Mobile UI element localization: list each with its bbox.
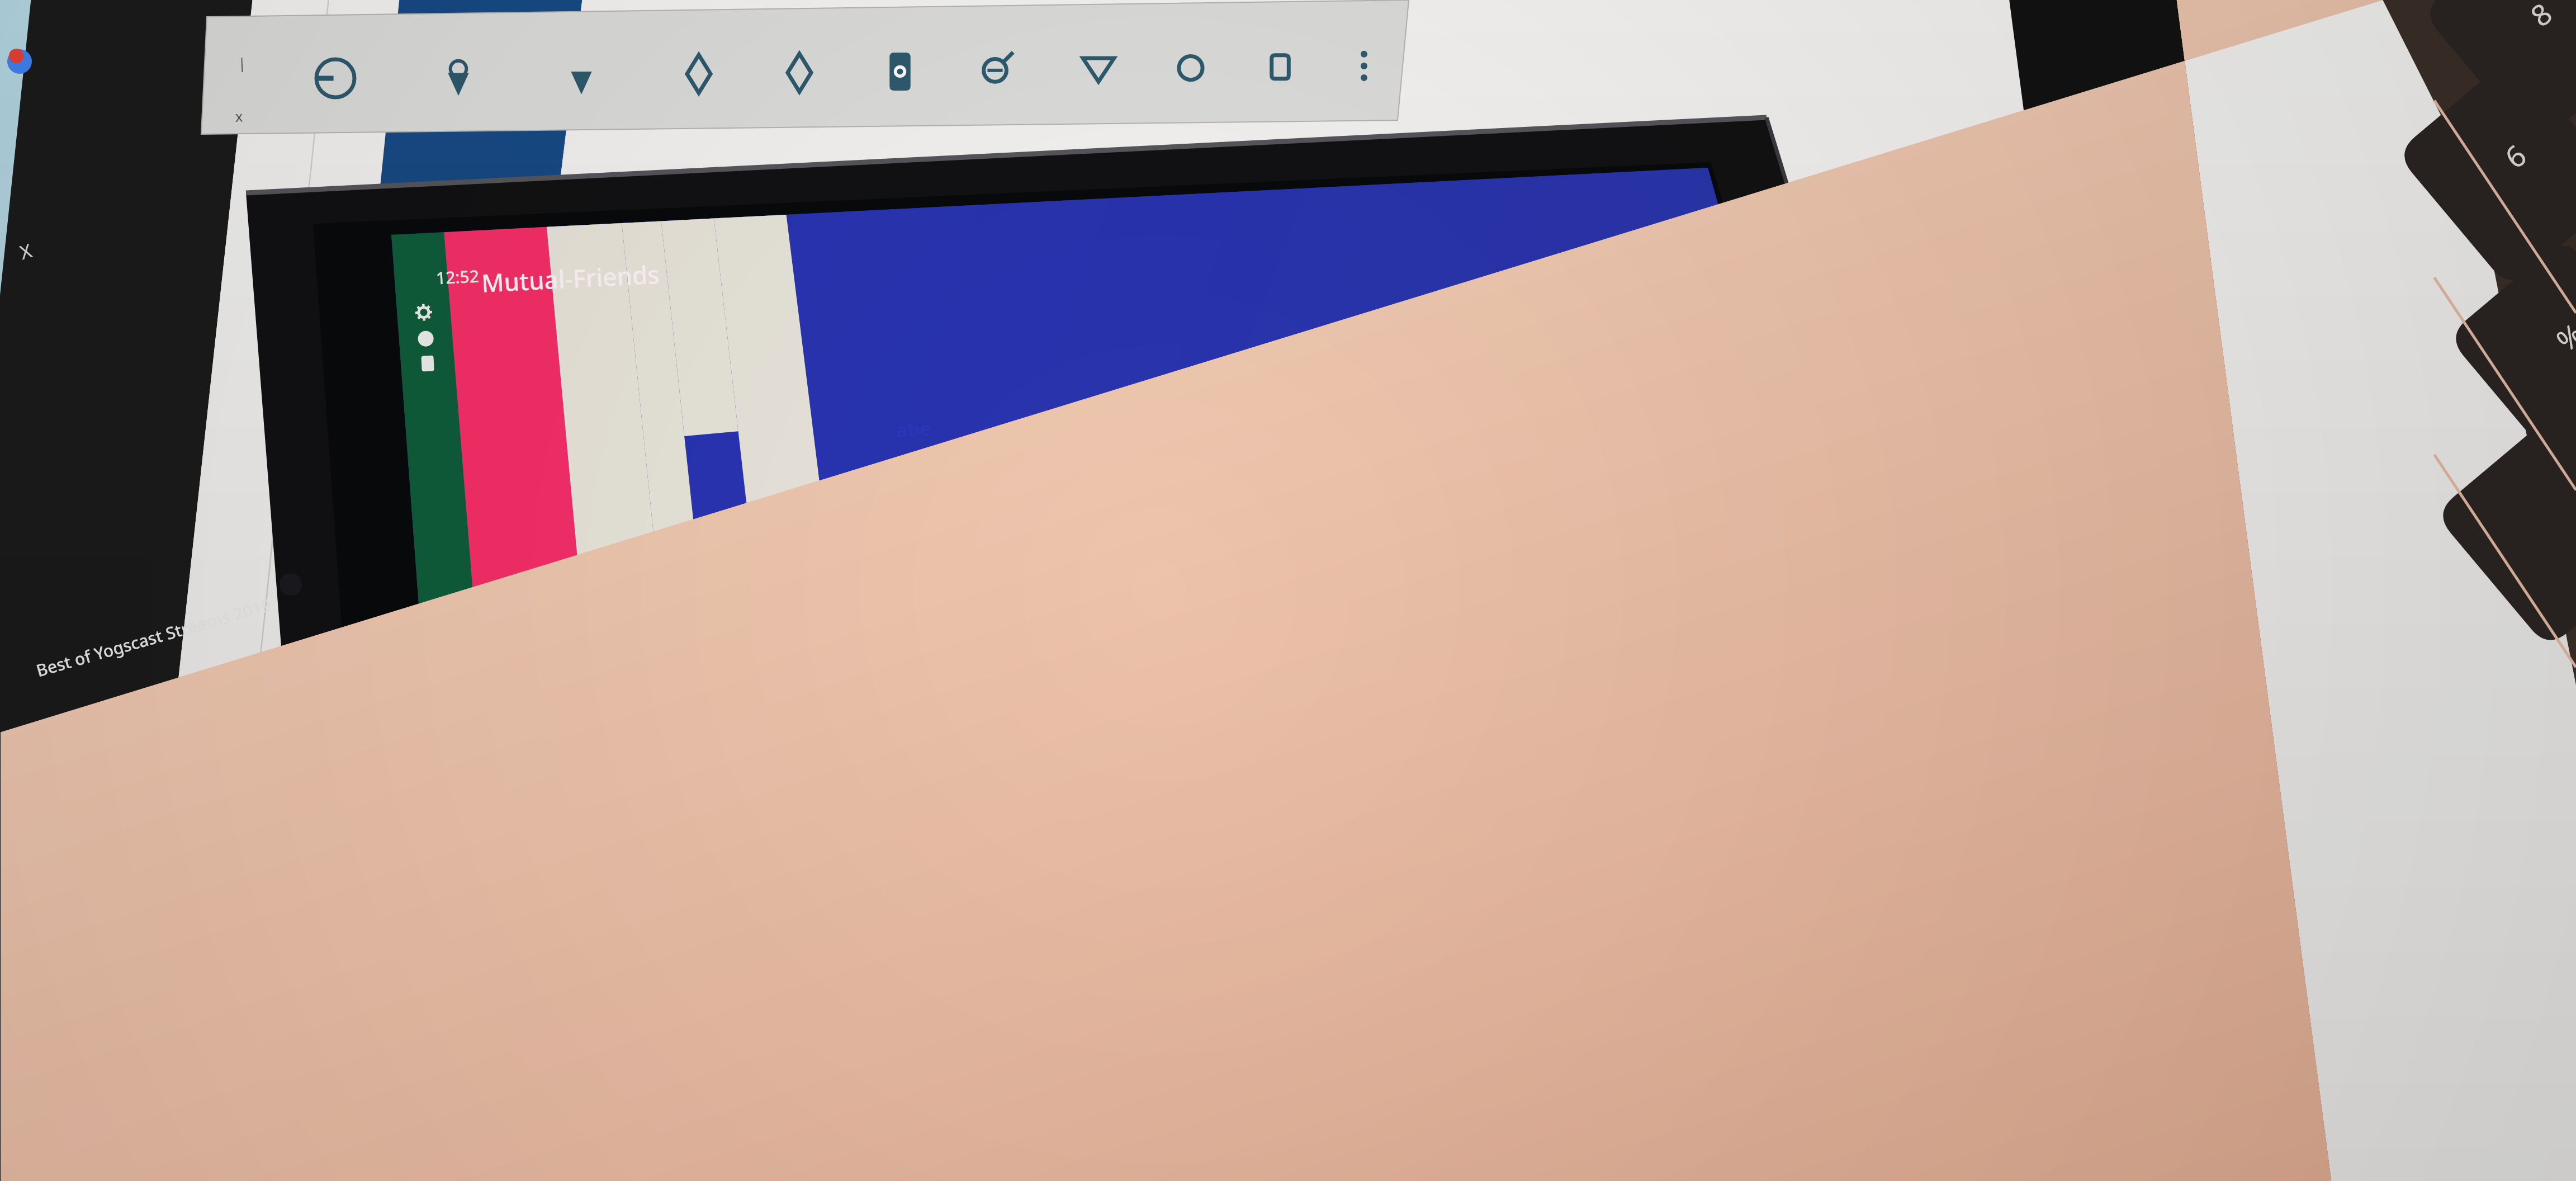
button[interactable]: Photo of an Android phone running Mutual…: [0, 0, 2576, 1181]
